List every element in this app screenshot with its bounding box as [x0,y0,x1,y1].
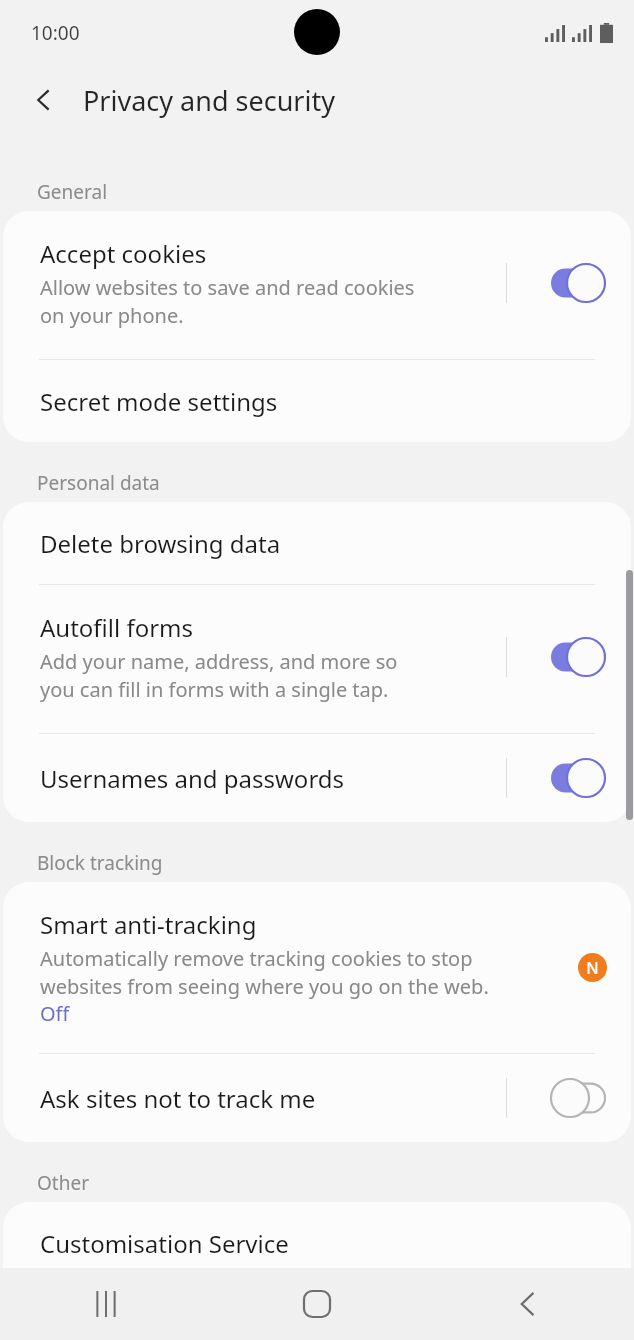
button[interactable]: Smart anti-tracking [3,882,631,1053]
staticText: Customisation Service [40,1227,289,1260]
staticText: Personal data [37,470,160,496]
button[interactable]: On [551,637,605,677]
staticText: 10:00 [31,20,80,46]
button[interactable]: Recents [74,1272,138,1336]
staticText: General [37,179,108,205]
button[interactable]: Back [496,1272,560,1336]
staticText: Secret mode settings [40,385,278,418]
staticText: Allow websites to save and read cookies … [40,274,415,329]
button[interactable]: Privacy dashboard [3,1285,631,1340]
button[interactable]: Customisation Service [3,1202,631,1284]
button[interactable]: Off [551,1078,605,1118]
staticText: Accept cookies [40,237,207,270]
button[interactable]: Accept cookies [3,211,631,359]
staticText: Smart anti-tracking [40,908,257,941]
button[interactable]: On [551,758,605,798]
button[interactable]: Secret mode settings [3,360,631,442]
staticText: N [586,957,599,979]
button[interactable]: Ask sites not to track me [3,1054,631,1142]
staticText: Off [40,1000,70,1027]
staticText: Block tracking [37,850,163,876]
staticText: Ask sites not to track me [40,1082,316,1115]
staticText: Privacy dashboard [40,1296,248,1329]
staticText: Other [37,1170,90,1196]
staticText: Privacy and security [83,82,335,119]
staticText: Usernames and passwords [40,762,345,795]
staticText: Add your name, address, and more so you … [40,648,398,703]
button[interactable]: Autofill forms [3,585,631,733]
button[interactable]: Delete browsing data [3,502,631,584]
staticText: Delete browsing data [40,527,281,560]
button[interactable]: Home [285,1272,349,1336]
button[interactable]: Usernames and passwords [3,734,631,822]
staticText: Automatically remove tracking cookies to… [40,945,489,1000]
staticText: Autofill forms [40,611,194,644]
button[interactable]: Back [16,72,72,128]
button[interactable]: On [551,263,605,303]
